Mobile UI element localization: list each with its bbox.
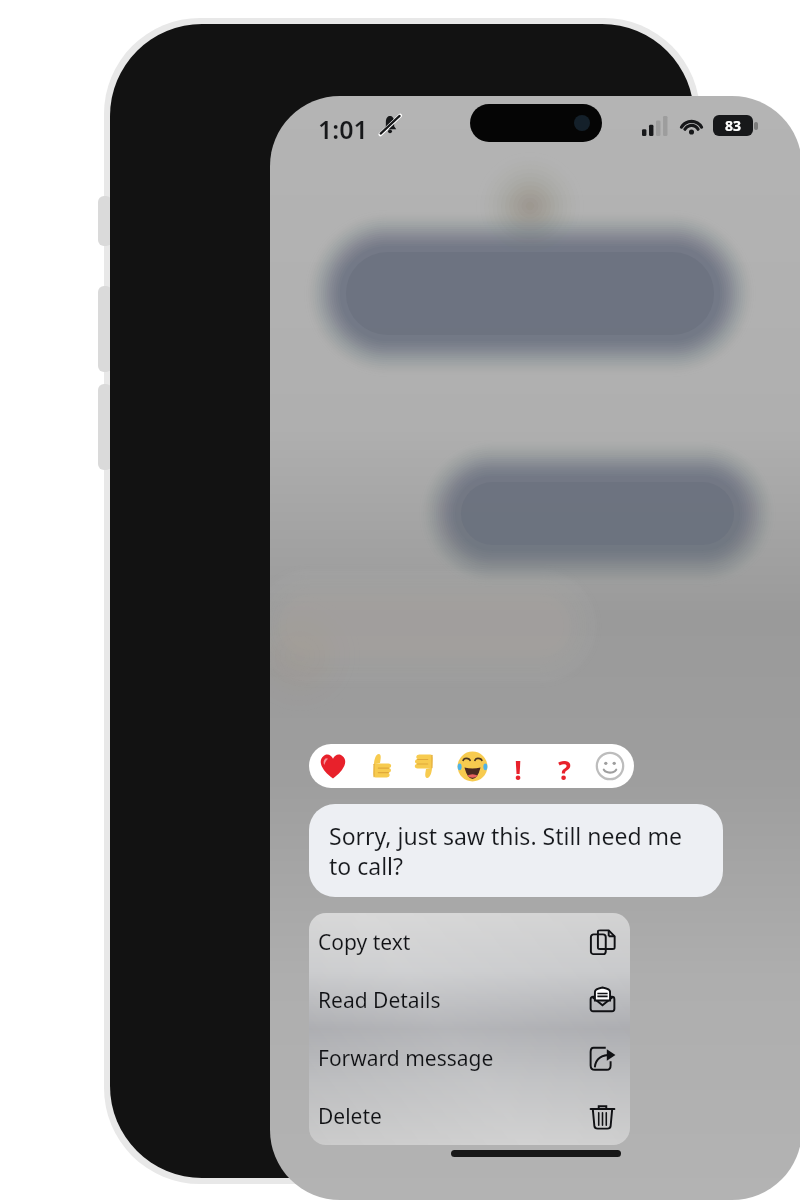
- button[interactable]: Forward message: [309, 1029, 630, 1087]
- staticText: !: [514, 751, 522, 781]
- staticText: Copy text: [318, 928, 411, 957]
- button[interactable]: Question: [541, 744, 587, 788]
- button[interactable]: More reactions: [587, 744, 633, 788]
- staticText: Forward message: [318, 1044, 494, 1073]
- staticText: 83: [725, 116, 742, 135]
- button[interactable]: Sorry, just saw this. Still need me to c…: [309, 804, 723, 897]
- staticText: 1:01: [318, 112, 368, 146]
- button[interactable]: Delete: [309, 1087, 630, 1145]
- button[interactable]: Copy text: [309, 913, 630, 971]
- button[interactable]: Like: [357, 744, 403, 788]
- staticText: Sorry, just saw this. Still need me to c…: [329, 820, 683, 881]
- button[interactable]: Dislike: [403, 744, 449, 788]
- staticText: ?: [558, 751, 571, 781]
- staticText: Delete: [318, 1102, 382, 1131]
- staticText: Read Details: [318, 986, 441, 1015]
- button[interactable]: Emphasize: [495, 744, 541, 788]
- button[interactable]: Laugh: [449, 744, 495, 788]
- button[interactable]: Love: [309, 744, 357, 788]
- button[interactable]: Read Details: [309, 971, 630, 1029]
- other: Silent mode: [377, 112, 403, 138]
